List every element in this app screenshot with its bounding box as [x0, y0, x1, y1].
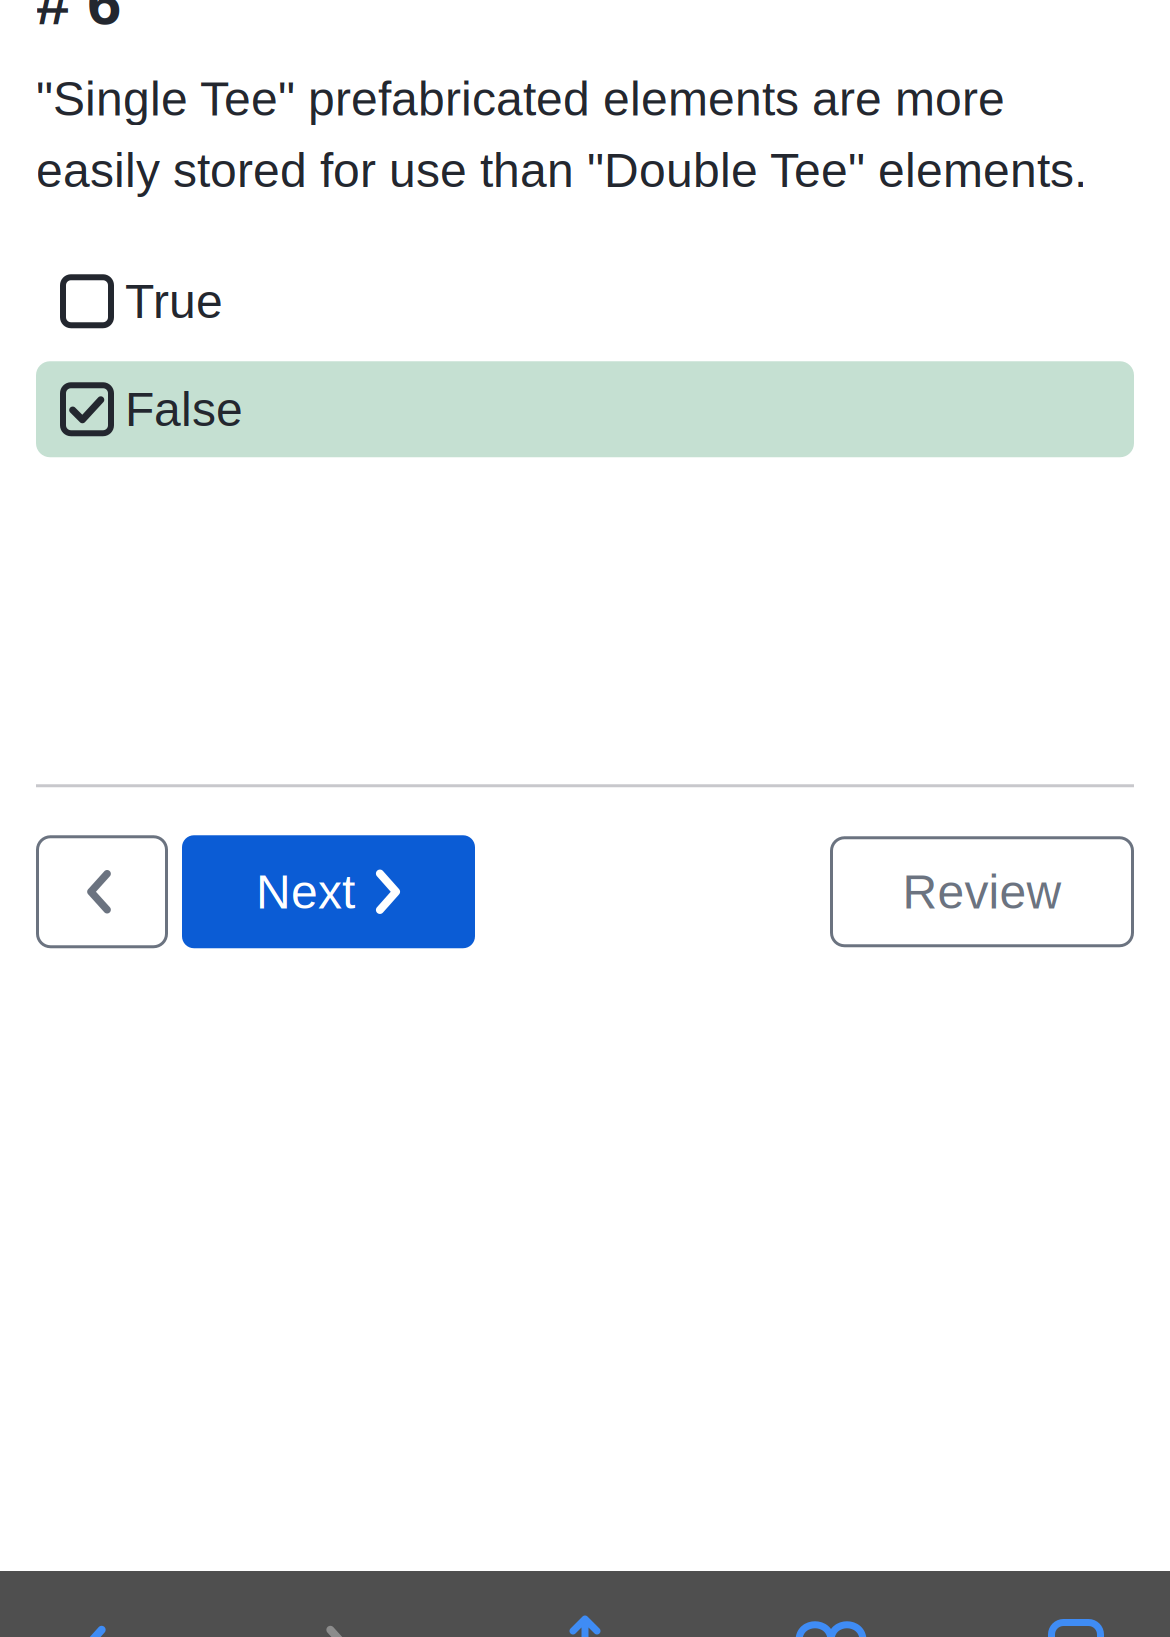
staticText: "Single Tee" prefabricated elements are …: [36, 72, 1005, 126]
button[interactable]: False: [36, 361, 1134, 457]
button[interactable]: Previous question: [36, 835, 168, 948]
button[interactable]: Share: [520, 1616, 650, 1637]
button[interactable]: Back: [28, 1616, 158, 1637]
staticText: False: [125, 382, 243, 436]
button[interactable]: Forward: [274, 1616, 404, 1637]
button[interactable]: Review: [830, 836, 1134, 947]
staticText: easily stored for use than "Double Tee" …: [36, 144, 1087, 197]
button[interactable]: True: [36, 257, 1134, 345]
staticText: True: [125, 274, 223, 328]
staticText: # 6: [36, 0, 121, 37]
button[interactable]: Next: [182, 835, 475, 948]
staticText: Next: [256, 865, 355, 918]
button[interactable]: Bookmarks: [766, 1616, 896, 1637]
button[interactable]: Tabs: [1012, 1616, 1142, 1637]
staticText: Review: [902, 865, 1061, 918]
